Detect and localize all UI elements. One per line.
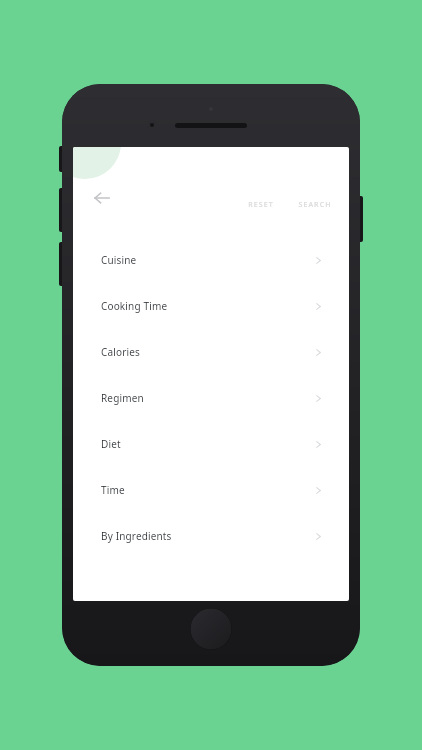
staticText: Cooking Time xyxy=(101,299,168,313)
button[interactable]: Cooking Time xyxy=(73,283,349,329)
staticText: Time xyxy=(101,483,125,497)
button[interactable]: Time xyxy=(73,467,349,513)
staticText: By Ingredients xyxy=(101,529,172,543)
staticText: RESET xyxy=(248,200,274,210)
button[interactable]: SEARCH xyxy=(293,195,337,215)
button[interactable]: Regimen xyxy=(73,375,349,421)
staticText: Calories xyxy=(101,345,140,359)
button[interactable]: RESET xyxy=(243,195,279,215)
button[interactable]: Cuisine xyxy=(73,237,349,283)
button[interactable]: By Ingredients xyxy=(73,513,349,559)
staticText: SEARCH xyxy=(298,200,332,210)
staticText: Cuisine xyxy=(101,253,137,267)
button[interactable]: Home xyxy=(190,608,232,650)
button[interactable]: Diet xyxy=(73,421,349,467)
button[interactable]: Back xyxy=(85,181,119,215)
staticText: Diet xyxy=(101,437,121,451)
button[interactable]: Calories xyxy=(73,329,349,375)
staticText: Regimen xyxy=(101,391,144,405)
